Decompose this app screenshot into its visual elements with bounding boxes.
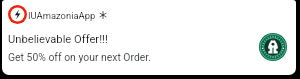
button[interactable] (2, 0, 296, 75)
staticText: IUAmazoniaApp (28, 10, 96, 21)
other: Starbucks (259, 33, 287, 61)
staticText: Unbelievable Offer!!! (8, 33, 108, 46)
staticText: Get 50% off on your next Order. (8, 51, 151, 63)
other: App icon (8, 5, 27, 24)
